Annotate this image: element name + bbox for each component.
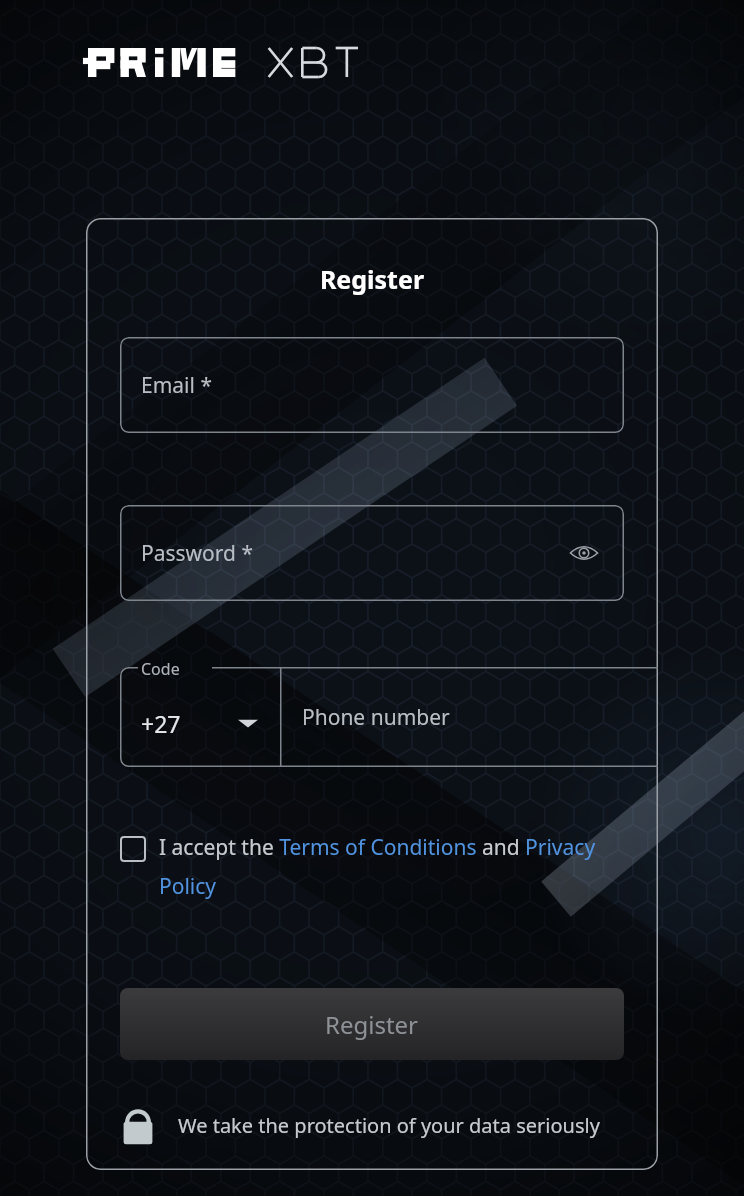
button[interactable]: Email * — [120, 337, 624, 433]
staticText: Code — [141, 658, 180, 680]
button[interactable]: Phone number — [280, 667, 658, 767]
staticText: Password * — [141, 539, 254, 568]
staticText: Register — [86, 262, 658, 296]
button[interactable]: Register — [120, 988, 624, 1060]
staticText: I accept the Terms of Conditions and Pri… — [159, 833, 624, 900]
staticText: +27 — [141, 708, 181, 739]
staticText: Register — [325, 1008, 419, 1041]
staticText: Phone number — [302, 703, 450, 732]
other: Security — [120, 1104, 156, 1146]
staticText: We take the protection of your data seri… — [178, 1112, 600, 1139]
button[interactable]: Password * — [120, 505, 624, 601]
other: PrimeXBT logo — [88, 48, 320, 77]
other: Select country code — [238, 715, 258, 731]
other: Accept terms — [120, 836, 146, 862]
button[interactable]: Code — [120, 667, 280, 767]
button[interactable]: Accept terms — [120, 833, 624, 900]
staticText: Email * — [141, 371, 212, 400]
button[interactable]: Show password — [562, 531, 606, 575]
